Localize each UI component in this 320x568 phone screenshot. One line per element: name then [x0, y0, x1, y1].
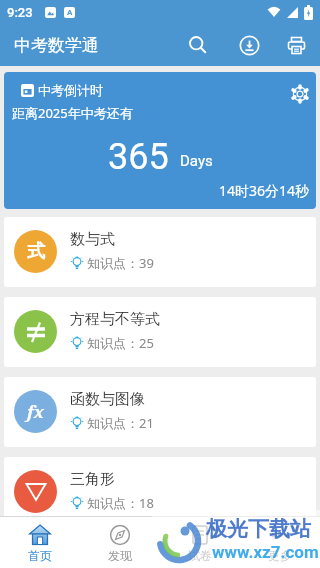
- staticText: 知识点：18: [87, 494, 154, 512]
- button[interactable]: 中考倒计时: [4, 72, 316, 209]
- staticText: 9:23: [7, 5, 33, 20]
- staticText: 知识点：39: [87, 254, 154, 272]
- staticText: 知识点：25: [87, 334, 154, 352]
- button[interactable]: 更多: [240, 517, 320, 568]
- staticText: 首页: [28, 548, 52, 563]
- staticText: 365: [108, 136, 169, 178]
- staticText: 知识点：21: [87, 414, 154, 432]
- staticText: 方程与不等式: [70, 310, 160, 329]
- button[interactable]: 式: [4, 217, 316, 287]
- staticText: 更多: [268, 548, 292, 563]
- staticText: 中考数学通: [14, 35, 99, 56]
- staticText: 函数与图像: [70, 390, 145, 409]
- button[interactable]: 试卷: [160, 517, 240, 568]
- button[interactable]: [287, 81, 313, 107]
- staticText: fx: [27, 400, 45, 423]
- staticText: 数与式: [70, 230, 115, 249]
- button[interactable]: 首页: [0, 517, 80, 568]
- button[interactable]: [170, 24, 226, 66]
- staticText: 距离2025年中考还有: [12, 104, 133, 122]
- button[interactable]: 方程与不等式: [4, 297, 316, 367]
- staticText: 极光下载站: [206, 516, 311, 542]
- staticText: 发现: [108, 548, 132, 563]
- button[interactable]: [226, 24, 272, 66]
- staticText: A: [67, 8, 73, 17]
- button[interactable]: [272, 24, 320, 66]
- staticText: www.xz7.com: [212, 542, 319, 562]
- staticText: 中考倒计时: [38, 82, 103, 98]
- button[interactable]: fx: [4, 377, 316, 447]
- staticText: 式: [27, 240, 45, 263]
- staticText: 14时36分14秒: [219, 181, 310, 200]
- button[interactable]: 发现: [80, 517, 160, 568]
- staticText: 三角形: [70, 470, 115, 489]
- staticText: 试卷: [188, 548, 212, 563]
- staticText: Days: [180, 152, 213, 170]
- button[interactable]: 三角形: [4, 457, 316, 527]
